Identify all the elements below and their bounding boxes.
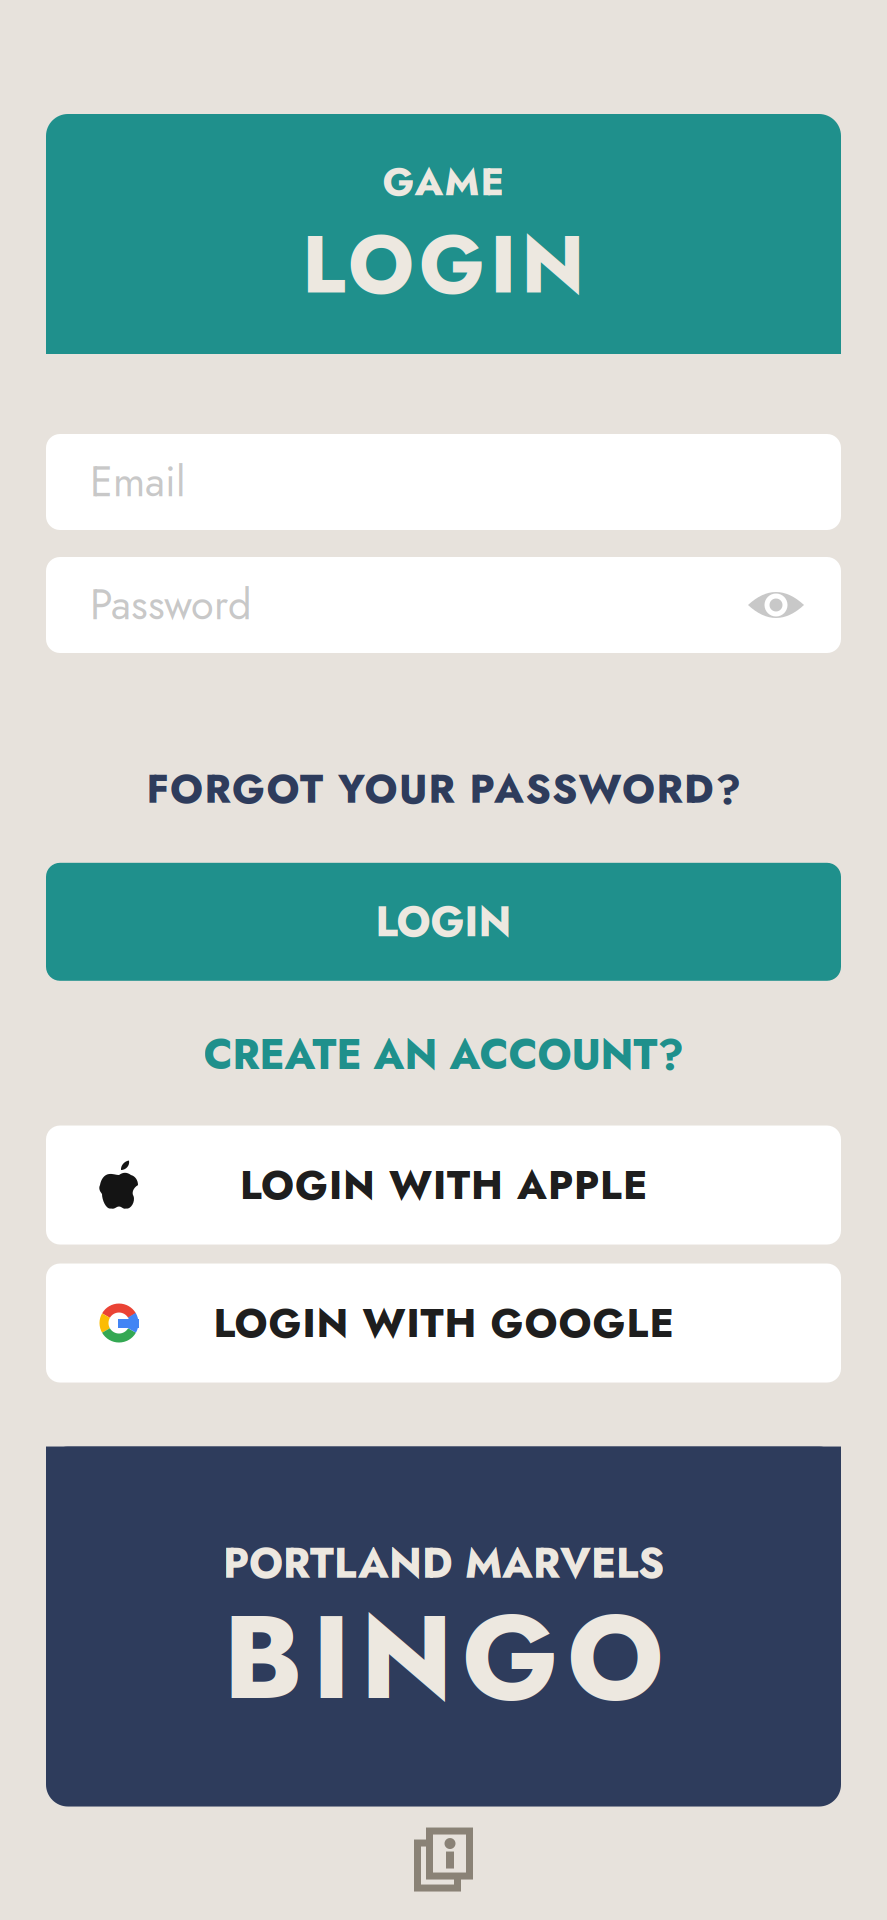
staticText: CREATE AN ACCOUNT?: [203, 1025, 683, 1084]
staticText: FORGOT YOUR PASSWORD?: [146, 760, 740, 818]
staticText: BINGO: [223, 1572, 664, 1742]
staticText: LOGIN WITH GOOGLE: [213, 1294, 673, 1352]
button[interactable]: LOGIN: [46, 863, 841, 981]
button[interactable]: Show password: [737, 578, 815, 632]
button[interactable]: CREATE AN ACCOUNT?: [203, 1025, 683, 1084]
staticText: LOGIN: [302, 207, 585, 323]
staticText: LOGIN: [375, 892, 511, 952]
staticText: Email: [90, 452, 186, 512]
staticText: GAME: [382, 154, 504, 210]
staticText: Password: [90, 575, 252, 635]
button[interactable]: LOGIN WITH GOOGLE: [46, 1263, 841, 1382]
staticText: LOGIN WITH APPLE: [240, 1156, 647, 1214]
button[interactable]: About: [414, 1827, 473, 1891]
staticText: PORTLAND MARVELS: [223, 1533, 664, 1593]
button[interactable]: FORGOT YOUR PASSWORD?: [146, 760, 740, 818]
button[interactable]: LOGIN WITH APPLE: [46, 1125, 841, 1244]
